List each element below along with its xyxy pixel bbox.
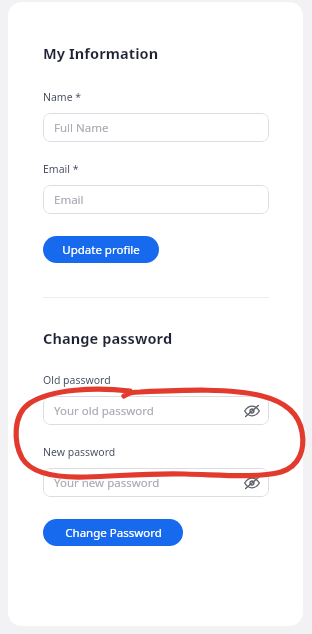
button[interactable]: Change Password [43, 519, 183, 546]
button[interactable]: Show password [241, 400, 263, 422]
staticText: Your old password [54, 403, 154, 419]
staticText: New password [43, 445, 116, 459]
staticText: Full Name [54, 120, 109, 136]
staticText: Change Password [65, 525, 162, 541]
button[interactable]: Your new password [43, 468, 269, 497]
button[interactable]: Full Name [43, 113, 269, 142]
staticText: My Information [43, 43, 159, 63]
button[interactable]: Show password [241, 472, 263, 494]
staticText: Update profile [62, 242, 140, 258]
button[interactable]: Update profile [43, 236, 159, 263]
staticText: Name * [43, 90, 82, 104]
button[interactable]: Your old password [43, 396, 269, 425]
staticText: Email * [43, 162, 79, 176]
button[interactable]: Email [43, 185, 269, 214]
staticText: Old password [43, 373, 111, 387]
staticText: Email [54, 192, 84, 208]
staticText: Change password [43, 328, 173, 348]
staticText: Your new password [54, 475, 160, 491]
